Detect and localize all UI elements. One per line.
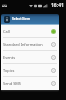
button[interactable]: Standard Information — [1, 38, 59, 51]
staticText: 16:41 — [51, 2, 64, 9]
staticText: Call — [3, 29, 50, 34]
button[interactable]: Topics — [1, 64, 59, 77]
button[interactable]: Events — [1, 51, 59, 64]
staticText: Topics — [3, 68, 50, 73]
button[interactable]: Send SMS — [1, 77, 59, 90]
staticText: Events — [3, 55, 50, 60]
staticText: Send SMS — [3, 81, 50, 86]
button[interactable]: Info — [1, 14, 59, 24]
button[interactable]: Call — [1, 25, 59, 38]
staticText: Standard Information — [3, 42, 50, 47]
staticText: Select Item — [12, 17, 31, 21]
other: Info — [4, 16, 10, 23]
